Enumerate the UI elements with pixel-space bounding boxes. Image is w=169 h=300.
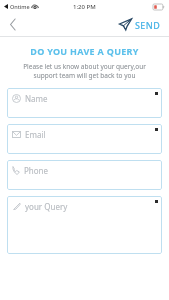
staticText: DO YOU HAVE A QUERY	[0, 45, 169, 57]
button[interactable]: your Query	[7, 196, 162, 254]
staticText: Please let us know about your query,our …	[12, 62, 157, 80]
staticText: 1:20 PM	[73, 3, 96, 11]
staticText: Phone	[24, 165, 49, 176]
staticText: Name	[25, 93, 48, 104]
button[interactable]: SEND	[117, 15, 163, 34]
button[interactable]: Phone	[7, 160, 162, 190]
button[interactable]: Back	[0, 13, 26, 36]
staticText: Ontime	[10, 3, 30, 10]
staticText: your Query	[25, 201, 68, 212]
staticText: Email	[25, 129, 46, 140]
button[interactable]: Email	[7, 124, 162, 154]
button[interactable]: Name	[7, 88, 162, 118]
staticText: SEND	[135, 19, 161, 31]
